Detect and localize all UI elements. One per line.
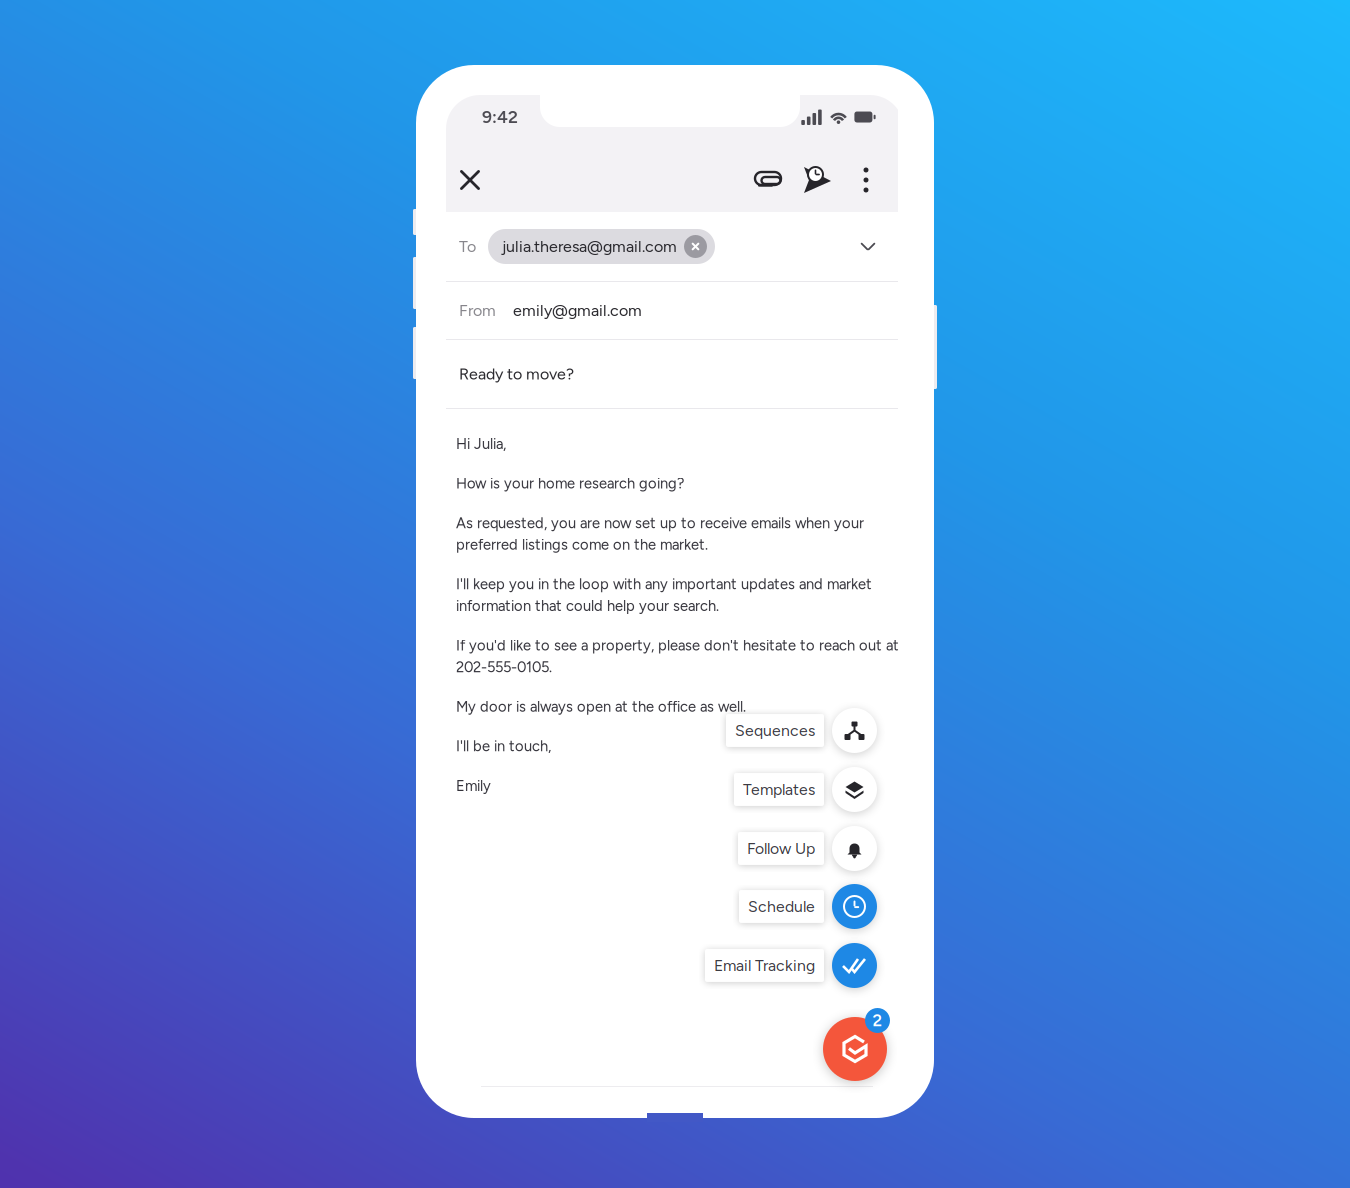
staticText: Emily xyxy=(456,777,491,795)
staticText: Schedule xyxy=(748,897,815,916)
staticText: emily@gmail.com xyxy=(513,301,642,320)
button[interactable]: Schedule xyxy=(617,884,877,929)
staticText: If you'd like to see a property, please … xyxy=(456,637,899,654)
button[interactable]: Templates xyxy=(617,767,877,812)
staticText: Hi Julia, xyxy=(456,435,506,453)
staticText: I'll keep you in the loop with any impor… xyxy=(456,575,872,593)
staticText: Templates xyxy=(743,780,815,799)
staticText: 2 xyxy=(872,1010,882,1030)
staticText: Ready to move? xyxy=(459,364,574,384)
staticText: julia.theresa@gmail.com xyxy=(502,237,677,256)
button[interactable]: Mailbox actions, 2 unread xyxy=(823,1005,893,1083)
button[interactable]: Schedule send xyxy=(793,148,843,212)
staticText: As requested, you are now set up to rece… xyxy=(456,514,864,532)
button[interactable]: Email Tracking xyxy=(617,943,877,988)
staticText: preferred listings come on the market. xyxy=(456,536,708,553)
staticText: From xyxy=(459,301,496,320)
button[interactable]: Discard draft xyxy=(444,148,496,212)
staticText: Follow Up xyxy=(747,839,815,858)
staticText: Sequences xyxy=(735,721,815,740)
staticText: 9:42 xyxy=(482,107,518,127)
staticText: How is your home research going? xyxy=(456,475,684,492)
staticText: 202-555-0105. xyxy=(456,658,552,676)
staticText: I'll be in touch, xyxy=(456,737,551,755)
button[interactable]: Follow Up xyxy=(617,826,877,871)
button[interactable]: Show Cc and Bcc xyxy=(850,228,886,264)
button[interactable]: Remove recipient xyxy=(684,235,707,258)
button[interactable]: Sequences xyxy=(617,708,877,753)
staticText: information that could help your search. xyxy=(456,597,719,615)
button[interactable]: More options xyxy=(843,148,889,212)
staticText: To xyxy=(459,237,476,256)
staticText: Email Tracking xyxy=(714,956,815,975)
staticText: My door is always open at the office as … xyxy=(456,698,746,715)
button[interactable]: Attach file xyxy=(743,148,793,212)
